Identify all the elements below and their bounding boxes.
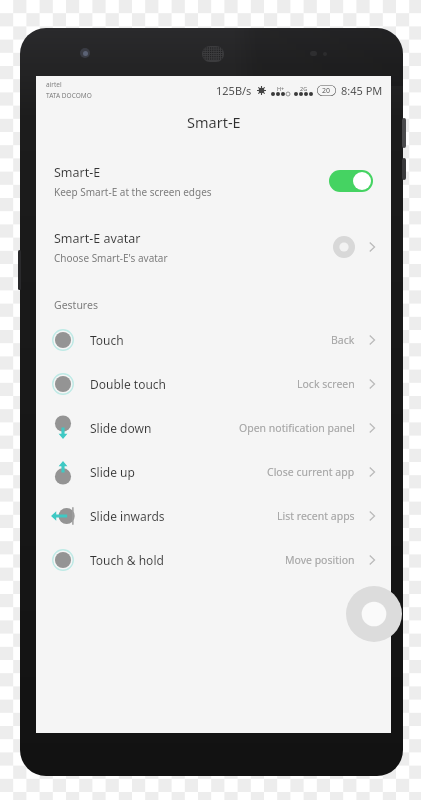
button[interactable]: Smart-E floating button bbox=[346, 586, 402, 642]
staticText: Touch & hold bbox=[90, 552, 164, 568]
button[interactable]: Double touch bbox=[36, 362, 391, 406]
staticText: 2G bbox=[300, 85, 308, 92]
staticText: airtel bbox=[46, 80, 62, 89]
staticText: Slide down bbox=[90, 420, 152, 436]
staticText: Keep Smart-E at the screen edges bbox=[54, 185, 212, 199]
staticText: Touch bbox=[90, 332, 124, 348]
staticText: Back bbox=[331, 333, 355, 347]
staticText: Smart-E bbox=[187, 112, 241, 132]
staticText: TATA DOCOMO bbox=[46, 91, 92, 100]
button[interactable]: Slide up bbox=[36, 450, 391, 494]
staticText: Gestures bbox=[54, 298, 98, 312]
staticText: 125B/s bbox=[216, 83, 252, 98]
button[interactable]: Smart-E bbox=[36, 158, 391, 204]
staticText: Double touch bbox=[90, 376, 166, 392]
staticText: Slide inwards bbox=[90, 508, 165, 524]
button[interactable]: Slide inwards bbox=[36, 494, 391, 538]
staticText: 20 bbox=[322, 86, 331, 96]
staticText: List recent apps bbox=[277, 509, 355, 523]
staticText: Lock screen bbox=[297, 377, 355, 391]
staticText: Move position bbox=[285, 553, 355, 567]
staticText: Slide up bbox=[90, 464, 135, 480]
button[interactable]: Touch & hold bbox=[36, 538, 391, 582]
staticText: 8:45 PM bbox=[341, 83, 383, 98]
button[interactable]: Touch bbox=[36, 318, 391, 362]
staticText: H+ bbox=[277, 85, 285, 92]
staticText: Close current app bbox=[267, 465, 355, 479]
button[interactable]: Smart-E avatar bbox=[36, 224, 391, 270]
staticText: Smart-E bbox=[54, 164, 101, 181]
staticText: Smart-E avatar bbox=[54, 230, 141, 247]
staticText: Open notification panel bbox=[239, 421, 355, 435]
staticText: Choose Smart-E's avatar bbox=[54, 251, 168, 265]
button[interactable]: Slide down bbox=[36, 406, 391, 450]
